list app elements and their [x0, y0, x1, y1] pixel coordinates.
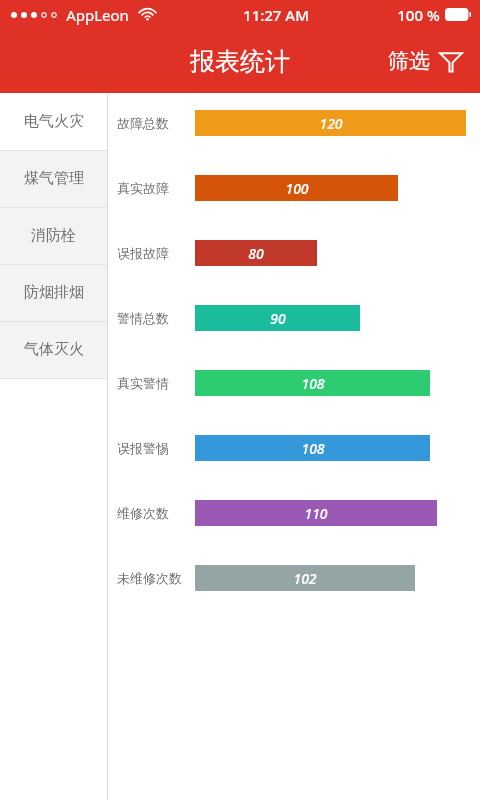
staticText: 未维修次数: [117, 570, 182, 586]
button[interactable]: 未维修次数: [108, 565, 480, 591]
staticText: 100: [285, 179, 309, 198]
staticText: 报表统计: [190, 46, 290, 77]
button[interactable]: 筛选 Filter: [384, 42, 468, 80]
staticText: 气体灭火: [24, 340, 84, 359]
staticText: 80: [248, 244, 264, 263]
button[interactable]: 真实故障: [108, 175, 480, 201]
staticText: AppLeon: [66, 5, 129, 25]
staticText: 108: [301, 374, 325, 393]
button[interactable]: 防烟排烟: [0, 264, 107, 321]
button[interactable]: 误报故障: [108, 240, 480, 266]
staticText: 11:27 AM: [243, 5, 309, 25]
staticText: 警情总数: [117, 310, 169, 326]
button[interactable]: 故障总数: [108, 110, 480, 136]
staticText: 真实警情: [117, 375, 169, 391]
button[interactable]: 煤气管理: [0, 150, 107, 207]
staticText: 误报警惕: [117, 440, 169, 456]
staticText: 故障总数: [117, 115, 169, 131]
staticText: 真实故障: [117, 180, 169, 196]
button[interactable]: 警情总数: [108, 305, 480, 331]
staticText: 维修次数: [117, 505, 169, 521]
button[interactable]: 维修次数: [108, 500, 480, 526]
staticText: 120: [319, 114, 343, 133]
staticText: 108: [301, 439, 325, 458]
staticText: 筛选: [388, 48, 430, 74]
staticText: 102: [293, 569, 317, 588]
staticText: 电气火灾: [24, 112, 84, 131]
button[interactable]: 消防栓: [0, 207, 107, 264]
staticText: 误报故障: [117, 245, 169, 261]
staticText: 防烟排烟: [24, 283, 84, 302]
staticText: 消防栓: [31, 226, 76, 245]
button[interactable]: 电气火灾: [0, 93, 107, 150]
staticText: 100 %: [397, 5, 440, 25]
button[interactable]: 误报警惕: [108, 435, 480, 461]
staticText: 110: [304, 504, 328, 523]
staticText: 煤气管理: [24, 169, 84, 188]
button[interactable]: 气体灭火: [0, 321, 107, 378]
staticText: 90: [270, 309, 286, 328]
button[interactable]: 真实警情: [108, 370, 480, 396]
